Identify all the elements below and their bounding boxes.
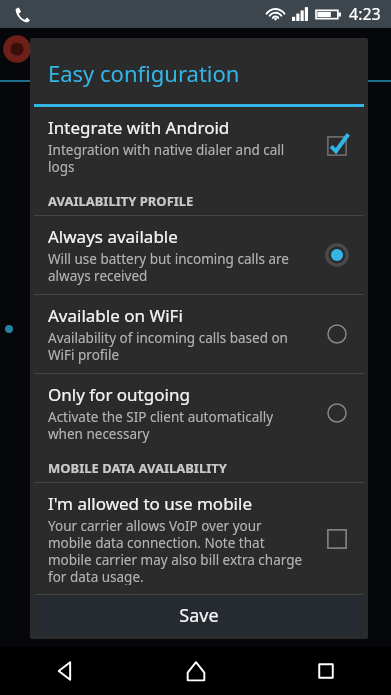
staticText: Only for outgoing (48, 383, 190, 406)
button[interactable]: Not selected (322, 398, 352, 428)
staticText: AVAILABILITY PROFILE (48, 192, 194, 210)
staticText: MOBILE DATA AVAILABILITY (48, 459, 227, 477)
button[interactable]: Only for outgoing (30, 374, 368, 452)
button[interactable]: Integrate with Android (30, 107, 368, 185)
button[interactable]: Always available (30, 216, 368, 294)
staticText: Easy configuration (48, 58, 240, 88)
button[interactable]: I'm allowed to use mobile (30, 483, 368, 594)
button[interactable]: Unchecked (322, 524, 352, 554)
staticText: Save (179, 603, 219, 628)
staticText: Integrate with Android (48, 116, 230, 139)
button[interactable]: Not selected (322, 319, 352, 349)
staticText: Available on WiFi (48, 304, 183, 327)
button[interactable]: Selected (322, 240, 352, 270)
button[interactable]: Recents (261, 647, 391, 695)
staticText: Your carrier allows VoIP over your mobil… (48, 517, 303, 585)
button[interactable]: Back (0, 647, 131, 695)
staticText: Always available (48, 225, 178, 248)
button[interactable]: Home (131, 647, 261, 695)
button[interactable]: Available on WiFi (30, 295, 368, 373)
staticText: I'm allowed to use mobile (48, 492, 252, 515)
staticText: 4:23 (349, 3, 381, 25)
staticText: Will use battery but incoming calls are … (48, 250, 289, 285)
button[interactable]: Checked (322, 131, 352, 161)
staticText: Availability of incoming calls based on … (48, 329, 288, 364)
staticText: Integration with native dialer and call … (48, 141, 285, 176)
staticText: Activate the SIP client automatically wh… (48, 408, 274, 443)
button[interactable]: Save (35, 595, 363, 635)
